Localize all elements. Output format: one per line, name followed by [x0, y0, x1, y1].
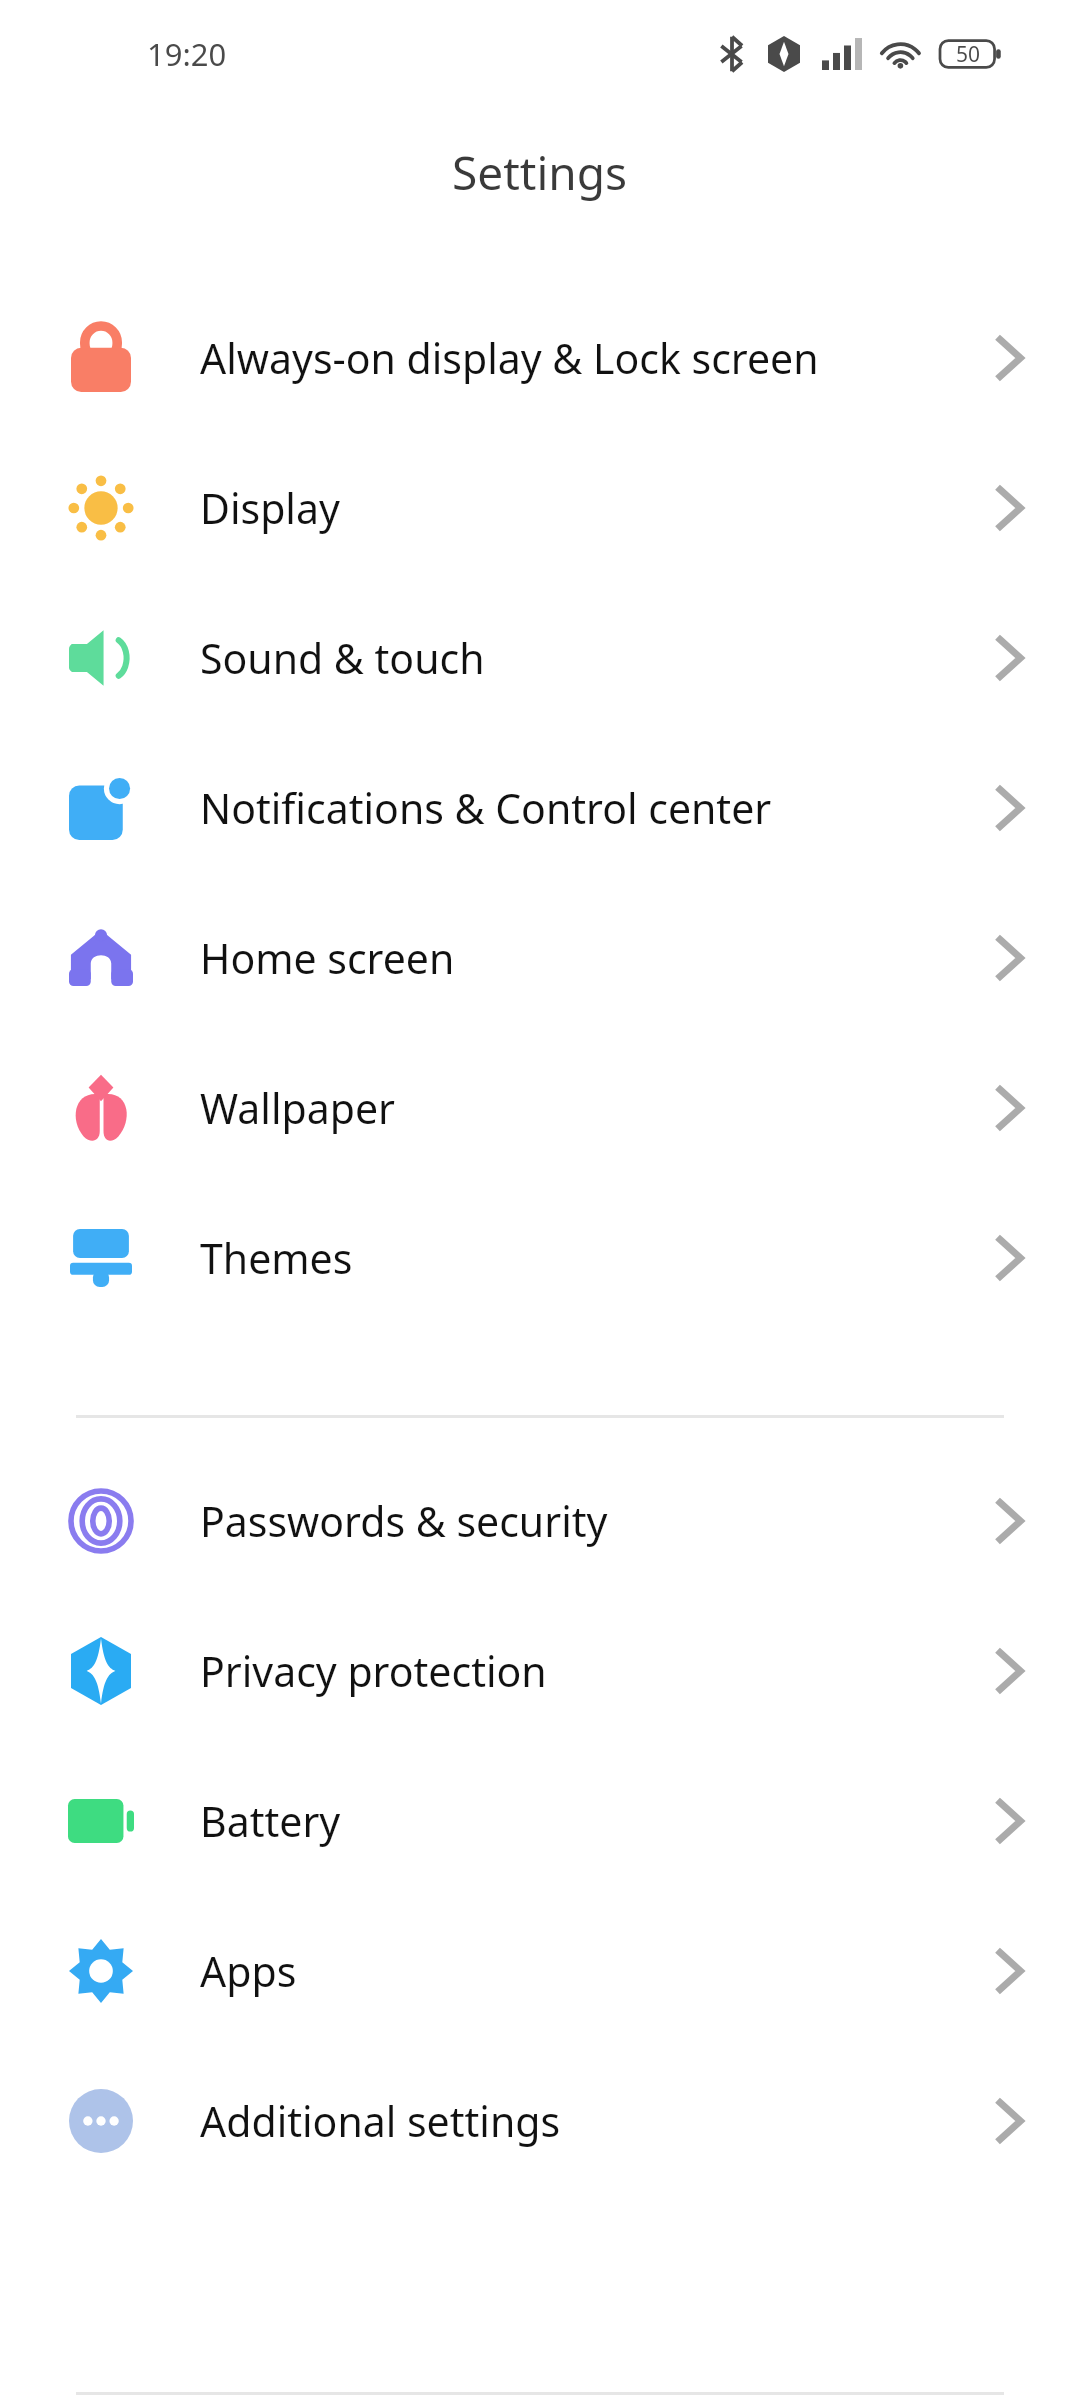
- other: Lock screen: [71, 324, 131, 392]
- button[interactable]: Battery: [0, 1746, 1080, 1896]
- button[interactable]: Display: [0, 433, 1080, 583]
- other: Notifications: [69, 776, 133, 840]
- staticText: Settings: [452, 141, 628, 204]
- staticText: Display: [200, 480, 340, 536]
- button[interactable]: Passwords and security: [0, 1446, 1080, 1596]
- button[interactable]: Wallpaper: [0, 1033, 1080, 1183]
- staticText: 50: [956, 40, 981, 69]
- button[interactable]: Additional settings: [0, 2046, 1080, 2196]
- other: Themes: [70, 1229, 132, 1287]
- staticText: Wallpaper: [200, 1080, 395, 1136]
- other: Home screen: [69, 930, 133, 986]
- button[interactable]: Apps: [0, 1896, 1080, 2046]
- other: Wallpaper: [70, 1074, 132, 1142]
- button[interactable]: Privacy protection: [0, 1596, 1080, 1746]
- button[interactable]: Home screen: [0, 883, 1080, 1033]
- staticText: Passwords & security: [200, 1493, 608, 1549]
- other: Apps: [69, 1939, 133, 2003]
- staticText: Sound & touch: [200, 630, 485, 686]
- other: Sound and touch: [69, 629, 133, 687]
- staticText: Home screen: [200, 930, 455, 986]
- other: Additional settings: [69, 2089, 133, 2153]
- button[interactable]: Sound and touch: [0, 583, 1080, 733]
- staticText: Notifications & Control center: [200, 780, 772, 836]
- staticText: Always-on display & Lock screen: [200, 330, 819, 386]
- staticText: Battery: [200, 1793, 341, 1849]
- other: Privacy protection: [71, 1637, 131, 1705]
- other: Passwords and security: [68, 1488, 134, 1554]
- button[interactable]: Notifications: [0, 733, 1080, 883]
- other: Battery: [68, 1799, 134, 1843]
- staticText: Themes: [200, 1230, 353, 1286]
- button[interactable]: Lock screen: [0, 283, 1080, 433]
- other: Display: [67, 474, 135, 542]
- staticText: Additional settings: [200, 2093, 561, 2149]
- staticText: 19:20: [147, 33, 227, 75]
- staticText: Apps: [200, 1943, 297, 1999]
- staticText: Privacy protection: [200, 1643, 547, 1699]
- button[interactable]: Themes: [0, 1183, 1080, 1333]
